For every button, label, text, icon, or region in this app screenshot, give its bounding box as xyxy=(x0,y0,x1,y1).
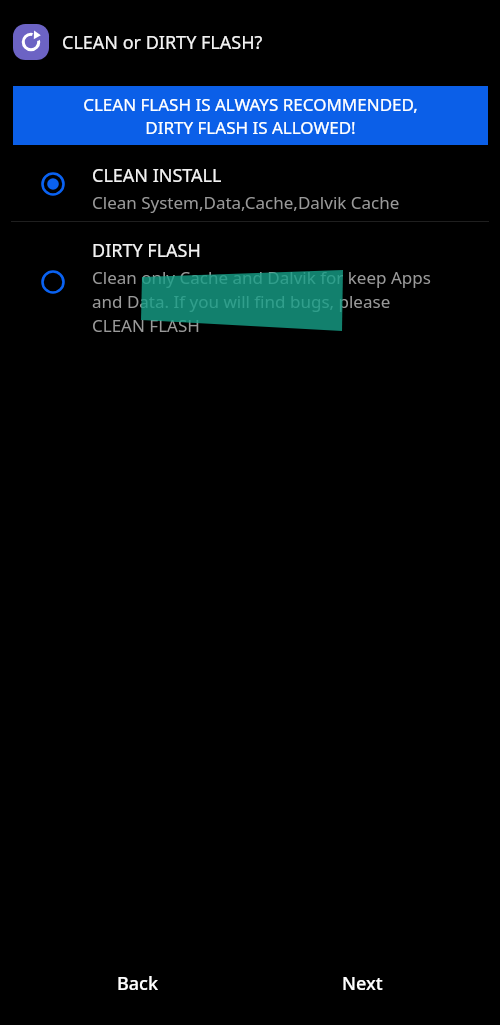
button[interactable]: Next xyxy=(287,957,437,1009)
other: App icon xyxy=(13,24,49,60)
staticText: Clean only Cache and Dalvik for keep App… xyxy=(92,266,431,337)
staticText: CLEAN or DIRTY FLASH? xyxy=(62,30,263,55)
button[interactable]: CLEAN FLASH IS ALWAYS RECOMMENDED, DIRTY… xyxy=(13,86,488,145)
staticText: DIRTY FLASH xyxy=(92,238,201,263)
staticText: Clean System,Data,Cache,Dalvik Cache xyxy=(92,191,400,214)
staticText: Next xyxy=(342,971,383,996)
staticText: CLEAN INSTALL xyxy=(92,163,222,188)
button[interactable]: CLEAN INSTALL xyxy=(0,153,500,221)
staticText: Back xyxy=(117,971,158,996)
button[interactable]: Back xyxy=(62,957,212,1009)
staticText: CLEAN FLASH IS ALWAYS RECOMMENDED, DIRTY… xyxy=(83,93,418,139)
button[interactable]: DIRTY FLASH xyxy=(0,228,500,338)
